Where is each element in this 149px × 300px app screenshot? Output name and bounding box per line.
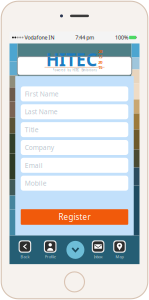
staticText: Vodafone IN bbox=[23, 34, 54, 41]
staticText: Map bbox=[115, 254, 123, 259]
staticText: Last Name bbox=[25, 107, 58, 116]
staticText: Back bbox=[20, 254, 29, 259]
button[interactable]: Mobile bbox=[21, 176, 128, 191]
staticText: Register bbox=[58, 212, 90, 222]
staticText: Title bbox=[25, 125, 39, 134]
staticText: 2015 bbox=[98, 59, 102, 70]
staticText: 100% bbox=[115, 34, 128, 41]
staticText: Email bbox=[25, 161, 43, 170]
button[interactable]: Map bbox=[109, 236, 130, 264]
button[interactable]: Title bbox=[21, 122, 128, 137]
button[interactable]: Inbox bbox=[88, 236, 109, 264]
button[interactable]: Email bbox=[21, 158, 128, 173]
button[interactable]: Register bbox=[21, 209, 128, 225]
button[interactable]: Back bbox=[14, 236, 35, 264]
staticText: Powered by HITEC Exhibitions bbox=[52, 68, 96, 72]
button[interactable]: Expand bbox=[65, 236, 86, 264]
staticText: HITEC bbox=[46, 48, 97, 71]
staticText: 7:44 pm bbox=[75, 34, 94, 41]
button[interactable]: Profile bbox=[40, 236, 61, 264]
staticText: Company bbox=[25, 143, 54, 152]
staticText: Inbox bbox=[94, 254, 103, 259]
staticText: Profile bbox=[45, 254, 56, 259]
button[interactable]: Company bbox=[21, 140, 128, 155]
button[interactable]: First Name bbox=[21, 86, 128, 101]
staticText: First Name bbox=[25, 89, 59, 98]
staticText: Mobile bbox=[25, 179, 47, 188]
staticText: 2015 bbox=[98, 49, 102, 59]
button[interactable]: Last Name bbox=[21, 104, 128, 119]
